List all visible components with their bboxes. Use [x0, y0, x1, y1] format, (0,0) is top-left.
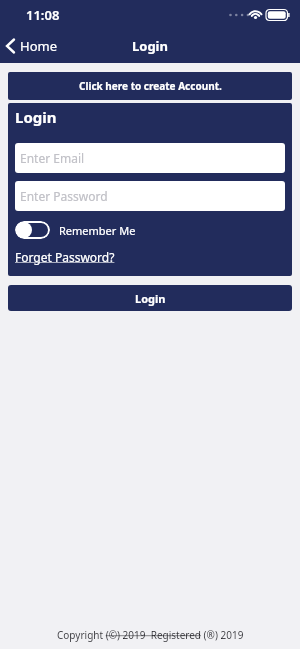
staticText: Copyright (©) 2019 Registered (®) 2019 — [57, 628, 244, 642]
button[interactable]: Home — [0, 37, 57, 55]
staticText: Enter Email — [20, 150, 85, 166]
staticText: Click here to create Account. — [79, 79, 222, 93]
staticText: 11:08 — [26, 6, 60, 24]
button[interactable]: Click here to create Account. — [8, 72, 292, 100]
button[interactable]: Login — [8, 285, 292, 311]
staticText: Enter Password — [20, 188, 108, 204]
staticText: Login — [132, 37, 168, 55]
button[interactable]: Enter Password — [15, 181, 285, 211]
staticText: Home — [20, 37, 57, 55]
staticText: Remember Me — [59, 223, 136, 238]
button[interactable]: Forget Password? — [15, 249, 115, 265]
staticText: Login — [135, 291, 166, 306]
button[interactable]: Enter Email — [15, 143, 285, 173]
button[interactable] — [15, 221, 50, 239]
staticText: Login — [15, 107, 57, 127]
